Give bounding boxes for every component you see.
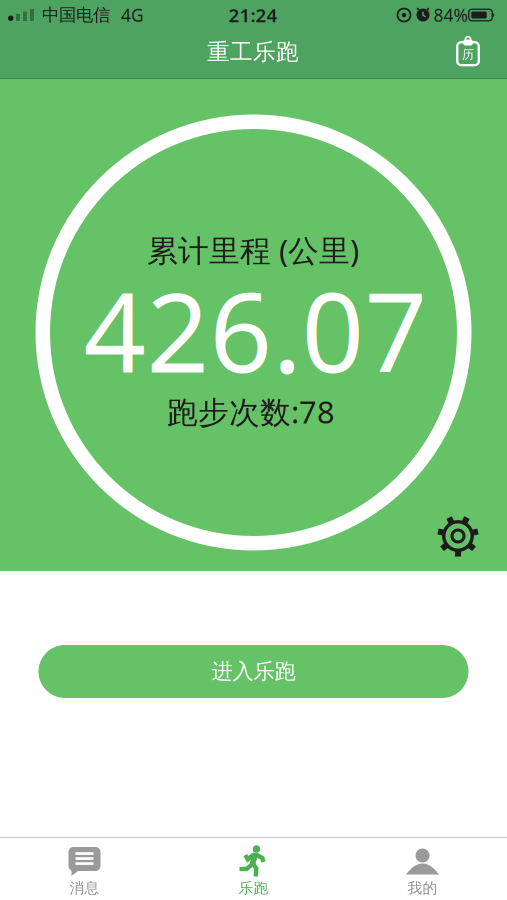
button[interactable]: 消息 xyxy=(0,838,169,900)
staticText: 进入乐跑 xyxy=(211,658,295,685)
button[interactable] xyxy=(435,513,481,559)
staticText: 消息 xyxy=(69,879,99,897)
button[interactable]: 乐跑 xyxy=(169,838,338,900)
staticText: 我的 xyxy=(407,879,437,897)
staticText: 乐跑 xyxy=(238,879,268,897)
staticText: 累计里程 (公里) xyxy=(147,230,359,270)
button[interactable]: 历 xyxy=(446,30,490,74)
staticText: 4G xyxy=(121,3,144,26)
staticText: 21:24 xyxy=(228,3,277,27)
staticText: 历 xyxy=(462,47,474,62)
staticText: 426.07 xyxy=(83,257,427,403)
staticText: 重工乐跑 xyxy=(207,38,299,66)
button[interactable]: 进入乐跑 xyxy=(38,645,468,698)
staticText: 中国电信 xyxy=(42,4,110,26)
staticText: 跑步次数:78 xyxy=(167,391,335,432)
staticText: 84% xyxy=(433,3,467,26)
button[interactable]: 我的 xyxy=(338,838,507,900)
